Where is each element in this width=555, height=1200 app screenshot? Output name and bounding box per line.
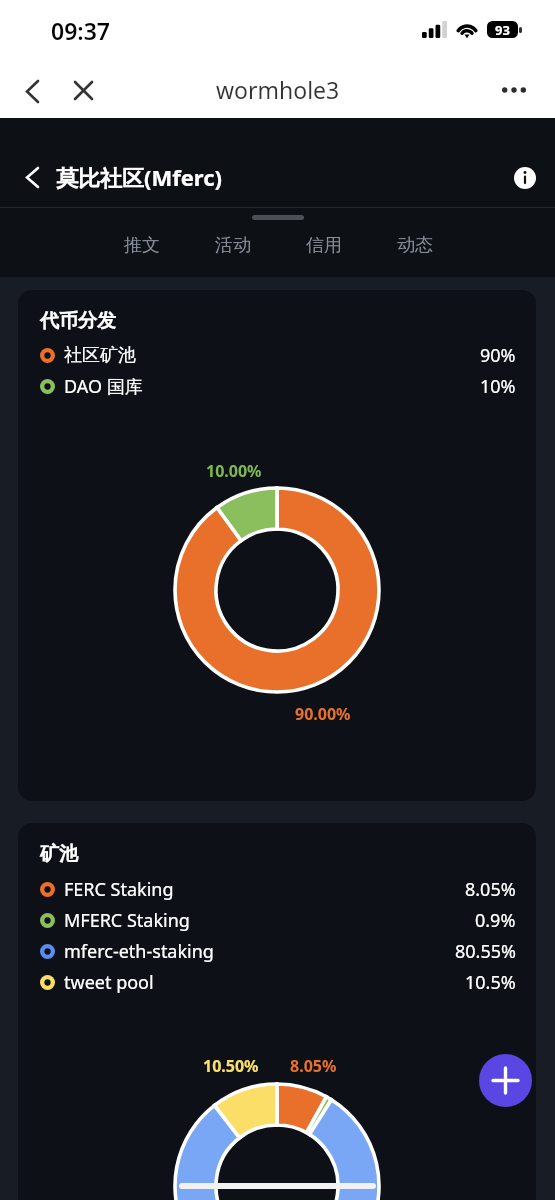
button[interactable]: 推文 — [96, 226, 187, 264]
button[interactable]: Info — [506, 159, 543, 196]
button[interactable]: 活动 — [187, 226, 278, 264]
button[interactable]: 信用 — [278, 226, 369, 264]
staticText: 10.00% — [206, 460, 262, 482]
button[interactable]: DAO 国库 — [18, 371, 536, 401]
button[interactable]: More options — [495, 71, 532, 108]
staticText: mferc-eth-staking — [64, 939, 214, 964]
staticText: 莫比社区(Mferc) — [56, 162, 223, 192]
button[interactable]: Back — [14, 73, 51, 110]
staticText: 推文 — [124, 234, 160, 257]
staticText: wormhole3 — [216, 74, 340, 105]
staticText: 09:37 — [51, 15, 110, 46]
staticText: MFERC Staking — [64, 908, 190, 933]
staticText: 矿池 — [40, 842, 78, 866]
staticText: 93 — [495, 21, 510, 38]
staticText: 90% — [480, 343, 516, 368]
staticText: 10.50% — [203, 1055, 259, 1077]
staticText: 10.5% — [465, 970, 516, 995]
button[interactable]: Close — [65, 72, 102, 109]
staticText: 90.00% — [295, 703, 351, 725]
staticText: tweet pool — [64, 970, 154, 995]
staticText: 10% — [480, 374, 516, 399]
button[interactable]: 动态 — [369, 226, 460, 264]
staticText: FERC Staking — [64, 877, 174, 902]
staticText: DAO 国库 — [64, 374, 143, 399]
staticText: 80.55% — [455, 939, 516, 964]
staticText: 信用 — [306, 234, 342, 257]
button[interactable]: MFERC Staking — [18, 905, 536, 935]
button[interactable]: tweet pool — [18, 967, 536, 997]
button[interactable]: Back — [14, 159, 51, 196]
staticText: 社区矿池 — [64, 344, 136, 367]
button[interactable]: Add — [479, 1054, 532, 1107]
staticText: 动态 — [397, 234, 433, 257]
staticText: 0.9% — [475, 908, 516, 933]
button[interactable]: 社区矿池 — [18, 340, 536, 370]
staticText: 活动 — [215, 234, 251, 257]
button[interactable]: mferc-eth-staking — [18, 936, 536, 966]
staticText: 8.05% — [465, 877, 516, 902]
button[interactable]: FERC Staking — [18, 874, 536, 904]
staticText: 8.05% — [290, 1055, 337, 1077]
staticText: 代币分发 — [40, 309, 116, 333]
